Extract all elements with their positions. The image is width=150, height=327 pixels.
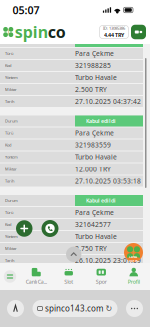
staticText: Tarih [5, 258, 14, 263]
staticText: 27.10.2025 04:37:42 [75, 97, 141, 106]
button[interactable]: Deposit [131, 25, 146, 39]
staticText: Tarih [5, 99, 14, 104]
staticText: Tarih [5, 178, 14, 184]
button[interactable]: Scroll to top [66, 247, 81, 262]
staticText: Para Çekme [75, 129, 114, 137]
staticText: 26.10.2025 23:01:09 [75, 256, 141, 265]
staticText: spin [15, 21, 48, 42]
staticText: Para Çekme [75, 49, 114, 58]
staticText: CANLI DESTEK [129, 255, 138, 262]
staticText: 2.750 TRY [75, 244, 107, 253]
staticText: Yöntem [5, 75, 18, 80]
staticText: Türü [5, 130, 13, 136]
button[interactable]: Profil [117, 263, 150, 290]
staticText: Slot [64, 278, 73, 285]
staticText: 27.10.2025 03:53:18 [75, 177, 141, 185]
button[interactable]: Add [16, 220, 32, 237]
button[interactable]: More [126, 300, 143, 317]
staticText: ID: 13085386 [103, 25, 125, 31]
staticText: Yöntem [5, 234, 18, 239]
staticText: Kabul edildi [86, 117, 116, 125]
staticText: Turbo Havale [75, 232, 117, 241]
staticText: Durum [5, 118, 18, 124]
button[interactable]: Canlı Ca... [20, 263, 52, 290]
staticText: ↻ [105, 304, 112, 313]
staticText: Yöntem [5, 154, 18, 160]
staticText: 321983559 [75, 141, 111, 149]
staticText: Kod [5, 222, 11, 227]
button[interactable]: Menu [0, 263, 20, 290]
button[interactable]: spin [0, 21, 66, 43]
staticText: 05:07 [12, 3, 39, 17]
button[interactable]: WhatsApp support [41, 220, 58, 237]
staticText: Kod [5, 63, 11, 68]
staticText: Spor [96, 278, 107, 285]
staticText: spinco143.com [45, 303, 103, 314]
button[interactable]: Spor [85, 263, 117, 290]
staticText: Kabul edildi [86, 197, 116, 204]
staticText: 12.000 TRY [75, 165, 111, 173]
staticText: Turbo Havale [75, 73, 117, 82]
button[interactable]: Back [7, 300, 24, 317]
staticText: Türü [5, 210, 13, 215]
staticText: Kod [5, 142, 11, 148]
staticText: Miktar [5, 166, 17, 172]
staticText: Turbo Havale [75, 153, 117, 161]
staticText: Miktar [5, 87, 17, 92]
staticText: Canlı Ca... [26, 278, 47, 285]
staticText: Miktar [5, 246, 17, 251]
staticText: Türü [5, 51, 13, 56]
staticText: 4.44 TRY [104, 31, 124, 38]
staticText: 2.500 TRY [75, 85, 107, 94]
staticText: 321642577 [75, 220, 111, 229]
button[interactable]: Slot [52, 263, 85, 290]
staticText: Durum [5, 198, 18, 203]
button[interactable]: Live support [124, 243, 143, 262]
staticText: Profil [128, 278, 140, 285]
staticText: Para Çekme [75, 208, 114, 217]
staticText: 321988285 [75, 61, 111, 70]
button[interactable]: spinco143.com [32, 300, 117, 317]
staticText: co [48, 21, 66, 42]
